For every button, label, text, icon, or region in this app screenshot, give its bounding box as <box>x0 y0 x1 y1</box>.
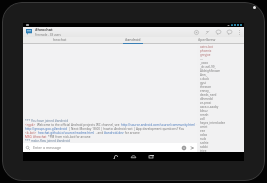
button[interactable]: #android <box>96 37 170 44</box>
button[interactable]: _dr-evil-99_ <box>197 65 244 69</box>
button[interactable]: astro-bot <box>197 45 244 49</box>
button[interactable]: bleuz <box>197 109 244 113</box>
button[interactable]: nulx <box>197 137 244 141</box>
staticText: _xoxo <box>200 61 208 65</box>
button[interactable]: szdrie <box>197 141 244 145</box>
staticText: deeds_nerd <box>200 93 217 97</box>
button[interactable]: Send <box>188 143 196 152</box>
staticText: gyui <box>200 81 207 85</box>
staticText: http://groups.goo.gl/android <box>25 127 67 131</box>
staticText: c.duck <box>200 77 209 81</box>
staticText: AbleighSnowe <box>200 69 221 73</box>
staticText: for arcane <box>124 131 140 135</box>
staticText: Welcome to the official Android projects… <box>37 123 121 127</box>
staticText: cmirt <box>200 125 208 129</box>
button[interactable]: _xoxo <box>197 61 244 65</box>
button[interactable]: zoll <box>197 117 244 121</box>
staticText: hayes_intercladee <box>200 121 226 125</box>
button[interactable]: dihmedd <box>197 97 244 101</box>
button[interactable]: Emoji <box>180 143 188 152</box>
staticText: | Next: Monday 18:00 | howto: Android ro… <box>67 127 197 131</box>
staticText: #hexchat <box>35 27 53 32</box>
staticText: http://source.android.com/source/communi… <box>121 123 196 127</box>
button[interactable]: odox <box>197 133 244 137</box>
button[interactable]: deeds_nerd <box>197 93 244 97</box>
staticText: bleuz <box>200 109 208 113</box>
button[interactable]: hayes_intercladee <box>197 121 244 125</box>
button[interactable]: phoenix <box>197 49 244 53</box>
staticText: <b-bot> <box>25 131 38 135</box>
button[interactable]: --- <box>197 57 244 61</box>
staticText: asxe-x-aaaby <box>200 105 219 109</box>
button[interactable]: Info <box>191 27 202 37</box>
button[interactable]: Chat <box>213 27 224 37</box>
staticText: dihmedd <box>200 97 213 101</box>
staticText: ze-proxi <box>200 101 212 105</box>
staticText: - and <box>95 131 104 135</box>
staticText: greyjoe <box>200 53 211 57</box>
button[interactable]: gyui <box>197 81 244 85</box>
button[interactable]: rennh <box>197 113 244 117</box>
button[interactable]: More options <box>235 27 243 37</box>
button[interactable]: triee <box>197 149 244 152</box>
staticText: triee <box>200 149 207 152</box>
staticText: rennh <box>200 113 209 117</box>
staticText: zoll <box>200 117 205 121</box>
button[interactable]: eee <box>197 129 244 133</box>
staticText: *** make-flow joined #android <box>25 139 71 143</box>
button[interactable]: cmirt <box>197 125 244 129</box>
staticText: #perlbrew <box>198 37 216 42</box>
staticText: szdrie <box>200 141 209 145</box>
button[interactable]: asxe-x-aaaby <box>197 105 244 109</box>
button[interactable]: ze-proxi <box>197 101 244 105</box>
button[interactable]: hexchat <box>23 37 96 44</box>
button[interactable]: sobbi <box>197 145 244 149</box>
staticText: Ann_ <box>200 73 207 77</box>
staticText: phoenix <box>200 49 212 53</box>
staticText: <rgpk> <box>25 123 37 127</box>
staticText: odox <box>200 133 208 137</box>
staticText: astro-bot <box>200 45 213 49</box>
staticText: MSG <box>25 135 33 139</box>
button[interactable]: thesson <box>197 85 244 89</box>
button[interactable]: c.duck <box>197 77 244 81</box>
button[interactable]: AbleighSnowe <box>197 69 244 73</box>
staticText: Freenode - 38 users <box>35 33 61 37</box>
staticText: *** You have joined #android <box>25 119 69 123</box>
button[interactable]: Back <box>109 152 122 161</box>
staticText: ennoy_ <box>200 89 211 93</box>
button[interactable]: #perlbrew <box>170 37 244 44</box>
staticText: _dr-evil-99_ <box>200 65 216 69</box>
staticText: #hexchat <box>33 135 48 139</box>
staticText: nulx <box>200 137 207 141</box>
staticText: hexchat.github.io/source/readme.html <box>38 131 95 135</box>
staticText: eee <box>200 129 206 133</box>
button[interactable]: Home <box>127 152 140 161</box>
staticText: #android <box>125 37 141 42</box>
staticText: sobbi <box>200 145 208 149</box>
staticText: thesson <box>200 85 212 89</box>
staticText: #android-dev <box>104 131 124 135</box>
staticText: --- <box>200 57 203 61</box>
button[interactable]: Messages <box>224 27 235 37</box>
staticText: Enter a message <box>33 145 61 150</box>
button[interactable]: Disconnect <box>202 27 213 37</box>
button[interactable]: ennoy_ <box>197 89 244 93</box>
button[interactable]: Ann_ <box>197 73 244 77</box>
staticText: *PM from nick-bot for arcane <box>48 135 91 139</box>
button[interactable]: greyjoe <box>197 53 244 57</box>
staticText: hexchat <box>53 37 67 42</box>
button[interactable]: Recents <box>145 152 158 161</box>
